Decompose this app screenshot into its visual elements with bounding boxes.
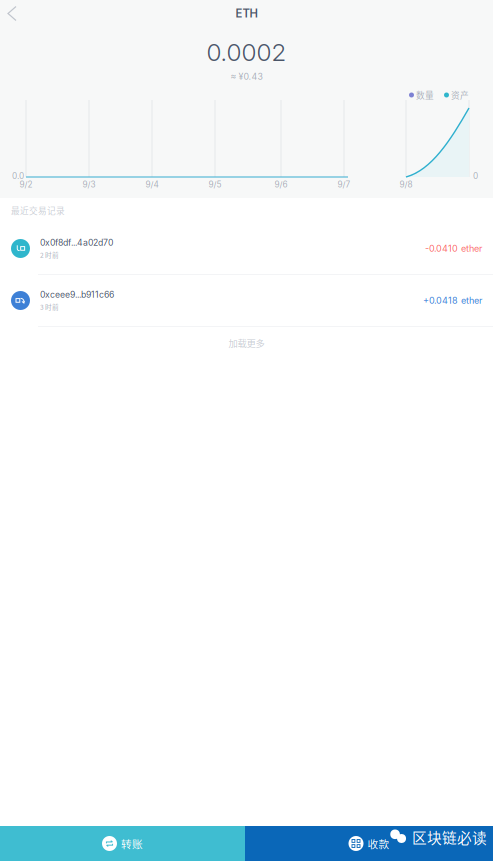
staticText: 9/8 bbox=[399, 179, 412, 189]
staticText: -0.0410 ether bbox=[425, 243, 482, 254]
staticText: 0xceee9...b911c66 bbox=[40, 289, 114, 300]
button[interactable]: 转账 bbox=[0, 826, 245, 861]
button[interactable]: 0xceee9...b911c66 bbox=[0, 275, 493, 326]
staticText: +0.0418 ether bbox=[423, 295, 482, 306]
staticText: 9/6 bbox=[274, 179, 287, 189]
staticText: 转账 bbox=[117, 836, 143, 851]
staticText: 9/3 bbox=[82, 179, 95, 189]
staticText: 收款 bbox=[363, 836, 389, 851]
button[interactable]: 收款 bbox=[245, 826, 493, 861]
staticText: 0 bbox=[473, 171, 478, 181]
staticText: 区块链必读 bbox=[412, 826, 487, 848]
staticText: 0.0002 bbox=[206, 37, 286, 67]
staticText: ETH bbox=[235, 7, 257, 20]
staticText: 3 时前 bbox=[40, 302, 59, 312]
button[interactable]: Back bbox=[0, 3, 30, 23]
staticText: 数量 bbox=[414, 89, 434, 101]
staticText: 9/5 bbox=[208, 179, 221, 189]
staticText: 9/7 bbox=[337, 179, 350, 189]
staticText: ≈ ¥0.43 bbox=[230, 71, 262, 82]
staticText: 0.0 bbox=[12, 171, 24, 181]
staticText: 加载更多 bbox=[228, 336, 264, 350]
staticText: 9/2 bbox=[19, 179, 32, 189]
staticText: 2 时前 bbox=[40, 250, 59, 260]
staticText: 9/4 bbox=[145, 179, 158, 189]
button[interactable]: 0x0f8df...4a02d70 bbox=[0, 223, 493, 274]
button[interactable]: 加载更多 bbox=[0, 327, 493, 359]
staticText: 最近交易记录 bbox=[11, 204, 65, 217]
staticText: 0x0f8df...4a02d70 bbox=[40, 237, 113, 248]
staticText: 资产 bbox=[449, 89, 469, 101]
